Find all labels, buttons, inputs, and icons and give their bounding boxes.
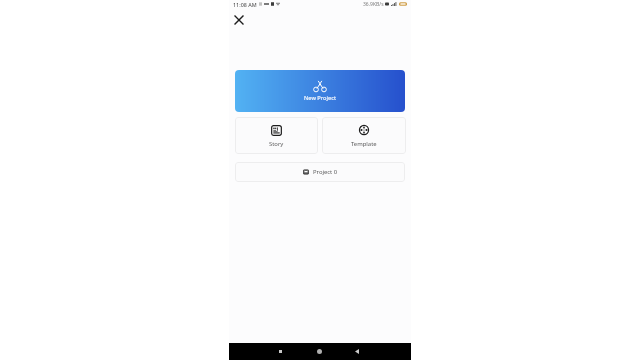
staticText: New Project [304, 94, 336, 102]
staticText: Template [351, 140, 377, 148]
staticText: 11:08 AM [233, 1, 257, 8]
button[interactable]: Back [350, 343, 364, 360]
staticText: 36.9KB/s [363, 1, 384, 8]
staticText: Story [269, 140, 284, 148]
button[interactable]: Recents [273, 343, 287, 360]
button[interactable]: New Project [235, 70, 405, 112]
button[interactable]: Project 0 [235, 162, 405, 182]
button[interactable]: Close [231, 12, 247, 28]
staticText: Project 0 [313, 168, 338, 176]
button[interactable]: Home [312, 343, 326, 360]
button[interactable]: Template [322, 117, 406, 154]
button[interactable]: Story [235, 117, 318, 154]
